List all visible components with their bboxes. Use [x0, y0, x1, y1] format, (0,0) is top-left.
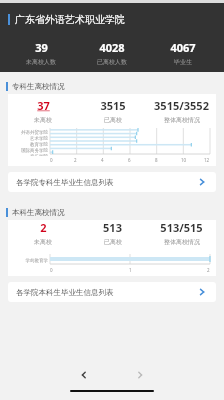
staticText: 广东省外语艺术职业学院 — [15, 13, 125, 26]
staticText: 各学院本科生毕业生信息列表 — [16, 288, 114, 297]
staticText: 2 — [207, 267, 210, 273]
staticText: 513/515 — [160, 220, 203, 235]
staticText: 12 — [204, 157, 210, 163]
staticText: 6 — [128, 157, 131, 163]
staticText: 0 — [50, 267, 53, 273]
staticText: 10 — [181, 157, 187, 163]
staticText: 已离校人数 — [97, 58, 127, 66]
button[interactable]: 2 — [8, 220, 78, 246]
staticText: 未离校 — [34, 116, 52, 124]
staticText: 整体离校情况 — [164, 116, 200, 124]
staticText: 毕业生 — [174, 58, 192, 66]
staticText: 2 — [74, 157, 77, 163]
button[interactable]: Forward — [128, 364, 152, 386]
staticText: 3515 — [100, 98, 126, 113]
staticText: 各学院专科生毕业生信息列表 — [16, 178, 114, 187]
staticText: 513 — [103, 220, 122, 235]
staticText: 教育学院 — [30, 142, 48, 148]
staticText: 已离校 — [104, 116, 122, 124]
staticText: 艺术学院 — [30, 136, 48, 142]
staticText: 3515/3552 — [154, 98, 209, 113]
staticText: 37 — [37, 98, 50, 113]
staticText: 39 — [35, 40, 48, 55]
staticText: 音乐学院 — [30, 154, 48, 156]
staticText: 本科生离校情况 — [12, 208, 65, 217]
staticText: 外语外贸学院 — [21, 130, 48, 136]
staticText: 专科生离校情况 — [12, 82, 65, 91]
staticText: 2 — [40, 220, 47, 235]
staticText: 整体离校情况 — [164, 238, 200, 246]
staticText: 1 — [129, 267, 132, 273]
staticText: 0 — [50, 157, 53, 163]
button[interactable]: Back — [72, 364, 96, 386]
staticText: 8 — [155, 157, 158, 163]
button[interactable]: 各学院本科生毕业生信息列表 — [8, 282, 216, 302]
staticText: 已离校 — [104, 238, 122, 246]
staticText: 未离校人数 — [26, 58, 56, 66]
staticText: 学前教育学 — [25, 258, 48, 264]
staticText: 4028 — [99, 40, 125, 55]
staticText: 国际商务学院 — [21, 148, 48, 154]
button[interactable]: 37 — [8, 98, 78, 124]
staticText: 4067 — [170, 40, 196, 55]
staticText: 4 — [101, 157, 104, 163]
button[interactable]: 各学院专科生毕业生信息列表 — [8, 172, 216, 192]
staticText: 未离校 — [34, 238, 52, 246]
